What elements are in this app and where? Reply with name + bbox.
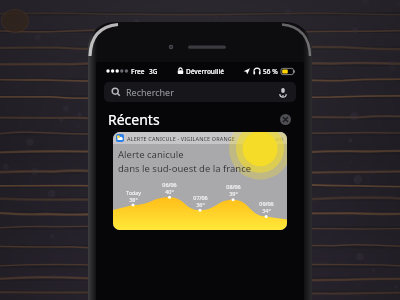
staticText: 34° xyxy=(262,207,271,214)
button[interactable]: Dictée vocale xyxy=(277,86,289,98)
button[interactable]: Effacer les récents xyxy=(278,112,292,126)
staticText: ALERTE CANICULE - VIGILANCE ORANGE xyxy=(127,135,235,142)
staticText: 06/06 xyxy=(162,181,177,188)
staticText: 3G xyxy=(149,67,158,76)
staticText: dans le sud-ouest de la france xyxy=(118,162,252,175)
button[interactable]: Rechercher xyxy=(104,82,296,102)
staticText: 36° xyxy=(196,201,205,208)
staticText: Free xyxy=(131,67,145,76)
staticText: 09/06 xyxy=(259,200,274,207)
staticText: 56 % xyxy=(263,67,278,76)
staticText: Déverrouillé xyxy=(186,67,224,76)
staticText: 40° xyxy=(165,188,174,195)
staticText: Alerte canicule xyxy=(118,148,184,161)
staticText: Today xyxy=(126,189,141,196)
staticText: 08/06 xyxy=(226,183,241,190)
button[interactable]: ALERTE CANICULE - VIGILANCE ORANGE xyxy=(113,132,287,230)
staticText: 07/06 xyxy=(193,194,208,201)
staticText: 38° xyxy=(129,196,138,203)
staticText: 39° xyxy=(229,190,238,197)
staticText: Récents xyxy=(108,110,160,128)
staticText: Rechercher xyxy=(126,86,174,98)
staticText: maintenant xyxy=(255,135,284,142)
